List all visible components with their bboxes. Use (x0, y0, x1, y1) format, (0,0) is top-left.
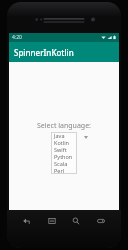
staticText: Scala (54, 160, 68, 167)
button[interactable]: Search (66, 214, 86, 227)
staticText: Java (54, 132, 65, 139)
button[interactable]: Swift (51, 146, 77, 153)
button[interactable]: Recent apps (91, 214, 111, 227)
button[interactable]: Java (51, 132, 77, 139)
button[interactable]: Kotlin (51, 139, 77, 146)
button[interactable]: Scala (51, 160, 77, 167)
staticText: Kotlin (54, 139, 69, 146)
button[interactable]: Back (17, 214, 37, 227)
staticText: Perl (54, 167, 65, 174)
staticText: 4:20 (12, 34, 22, 41)
staticText: Select language: (37, 121, 91, 131)
button[interactable]: Menu (42, 214, 62, 227)
button[interactable]: Python (51, 153, 77, 160)
staticText: SpinnerInKotlin (14, 47, 74, 58)
button[interactable]: SpinnerInKotlin (9, 42, 119, 62)
button[interactable]: Perl (51, 167, 77, 174)
other: Open language spinner (84, 136, 88, 139)
staticText: Python (54, 153, 73, 160)
staticText: Swift (54, 146, 67, 153)
